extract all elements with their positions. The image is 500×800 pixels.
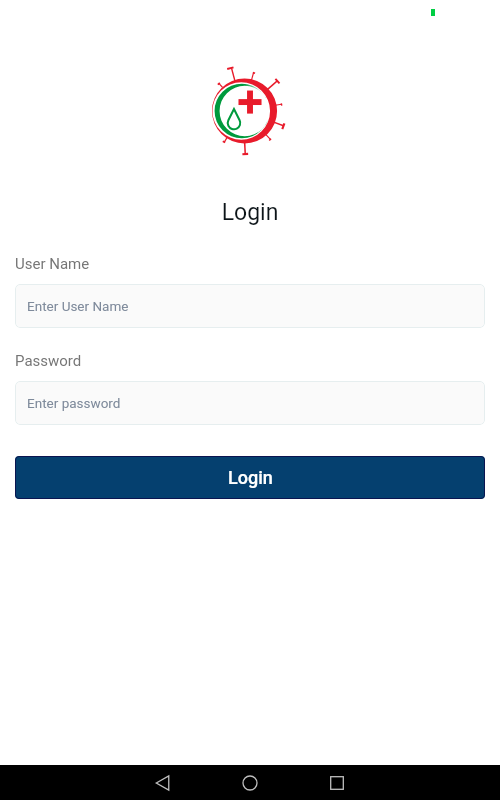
button[interactable]: Login xyxy=(15,456,485,499)
staticText: Enter password xyxy=(27,395,121,411)
button[interactable]: Home xyxy=(226,765,274,800)
button[interactable]: Recent apps xyxy=(313,765,361,800)
button[interactable]: Enter User Name xyxy=(15,284,485,328)
button[interactable]: Back xyxy=(139,765,187,800)
staticText: Login xyxy=(0,199,500,226)
staticText: User Name xyxy=(15,255,90,273)
staticText: Password xyxy=(15,352,82,370)
staticText: Login xyxy=(228,467,273,488)
button[interactable]: Enter password xyxy=(15,381,485,425)
staticText: Enter User Name xyxy=(27,298,129,314)
